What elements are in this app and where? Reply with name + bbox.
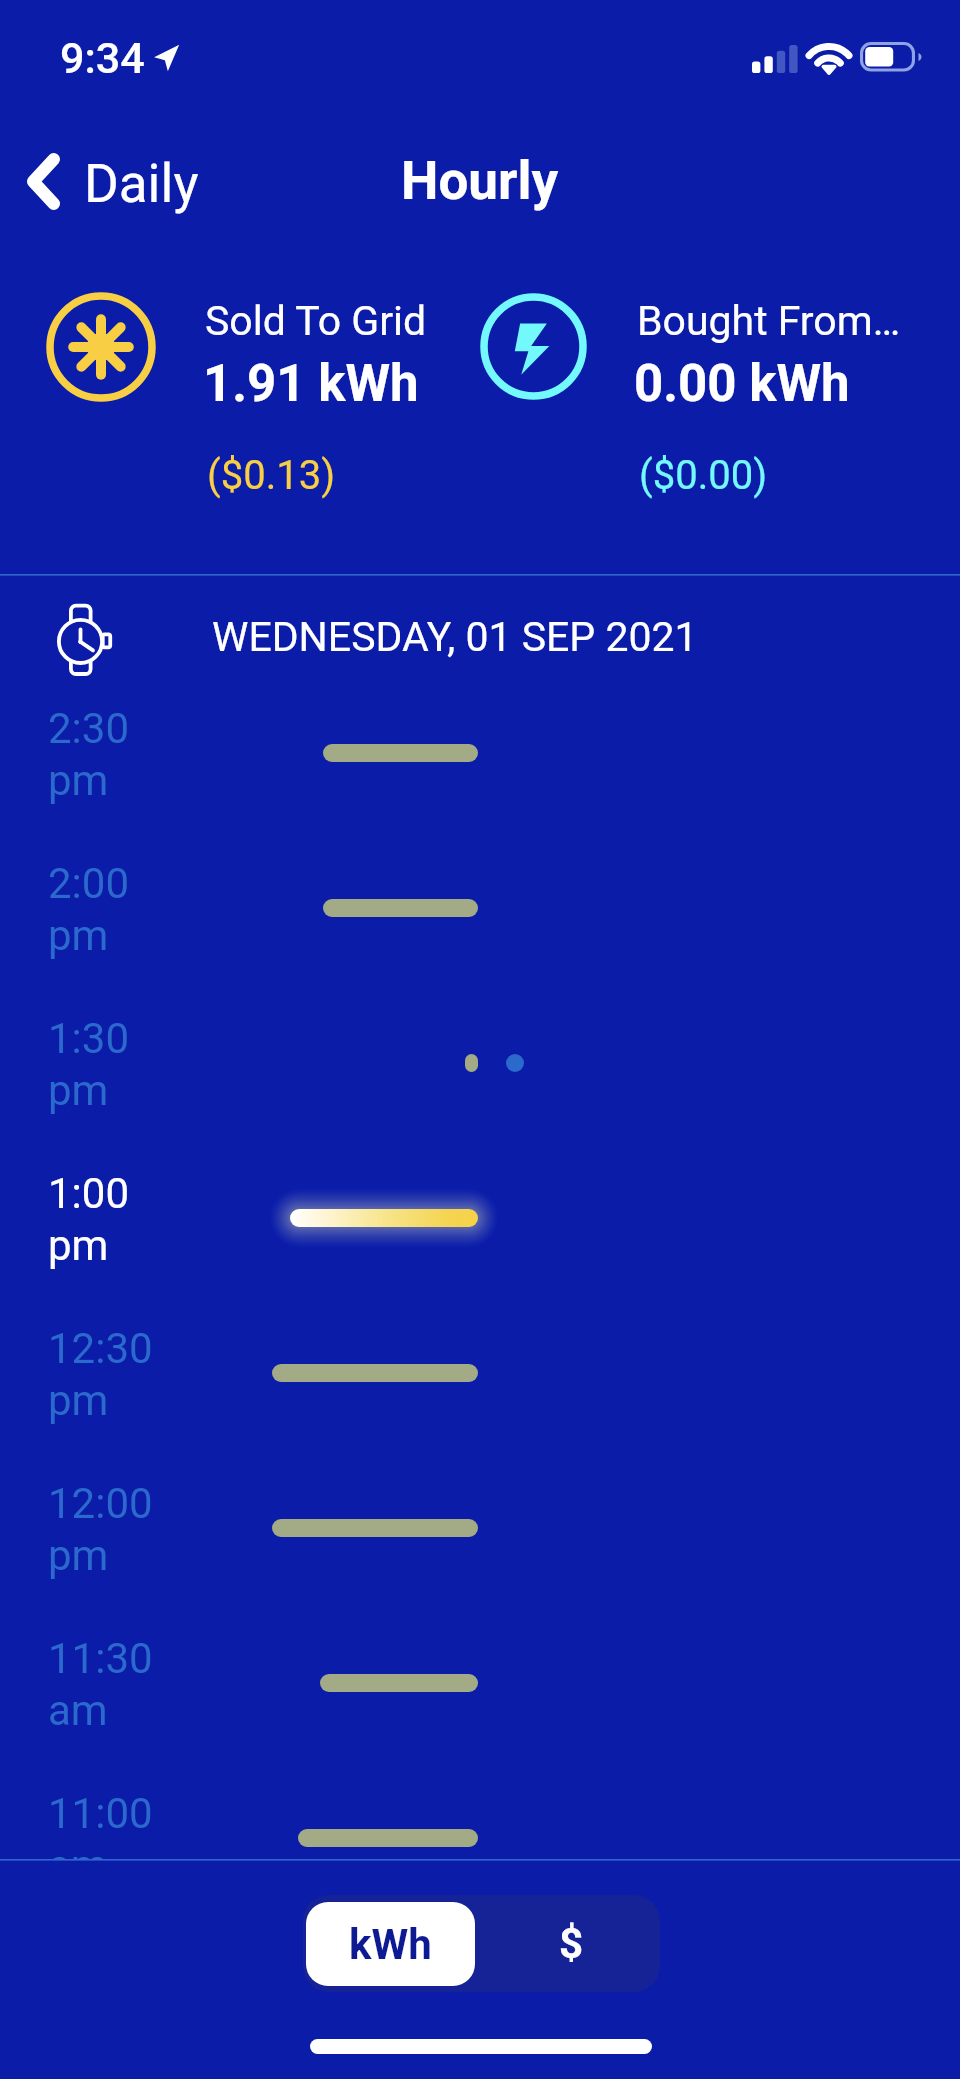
- button[interactable]: 12:00: [0, 1479, 960, 1634]
- staticText: WEDNESDAY, 01 SEP 2021: [212, 613, 698, 661]
- button[interactable]: 11:30: [0, 1634, 960, 1789]
- button[interactable]: 1:30: [0, 1014, 960, 1169]
- button[interactable]: Back to Daily: [6, 134, 219, 230]
- staticText: pm: [48, 756, 109, 805]
- staticText: pm: [48, 1531, 109, 1580]
- staticText: pm: [48, 911, 109, 960]
- staticText: am: [48, 1841, 108, 1859]
- staticText: kWh: [349, 1920, 432, 1969]
- staticText: pm: [48, 1221, 109, 1270]
- staticText: Sold To Grid: [205, 297, 427, 345]
- staticText: 2:00: [48, 859, 129, 908]
- staticText: ($0.00): [639, 452, 768, 499]
- button[interactable]: $: [483, 1895, 660, 1992]
- button[interactable]: 2:00: [0, 859, 960, 1014]
- staticText: ($0.13): [207, 452, 336, 499]
- staticText: 11:30: [48, 1634, 153, 1683]
- button[interactable]: kWh: [306, 1902, 475, 1986]
- button[interactable]: 11:00: [0, 1789, 960, 1859]
- staticText: Bought From…: [637, 297, 901, 345]
- staticText: 0.00 kWh: [634, 354, 850, 414]
- staticText: 2:30: [48, 704, 129, 753]
- staticText: $: [559, 1919, 584, 1968]
- staticText: 11:00: [48, 1789, 153, 1838]
- staticText: am: [48, 1686, 108, 1735]
- staticText: 1:30: [48, 1014, 129, 1063]
- button[interactable]: 12:30: [0, 1324, 960, 1479]
- staticText: 1.91 kWh: [203, 354, 419, 414]
- button[interactable]: Bought from grid: [480, 293, 587, 400]
- staticText: Hourly: [401, 150, 559, 212]
- button[interactable]: Sold to grid: [46, 292, 156, 402]
- staticText: pm: [48, 1066, 109, 1115]
- button[interactable]: 2:30: [0, 704, 960, 859]
- staticText: Daily: [84, 153, 199, 215]
- staticText: 1:00: [48, 1169, 129, 1218]
- staticText: pm: [48, 1376, 109, 1425]
- button[interactable]: 1:00: [0, 1169, 960, 1324]
- staticText: 12:30: [48, 1324, 153, 1373]
- staticText: 9:34: [60, 33, 145, 83]
- staticText: 12:00: [48, 1479, 153, 1528]
